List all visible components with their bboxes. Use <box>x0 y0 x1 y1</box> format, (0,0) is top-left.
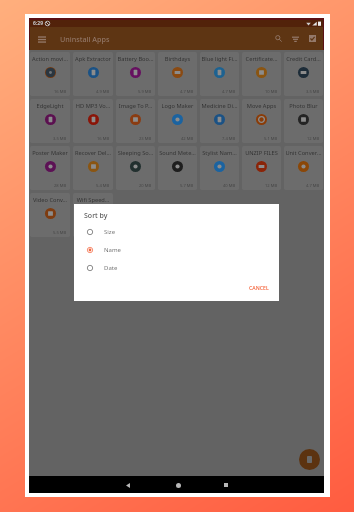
staticText: Battery Boo… <box>117 55 154 63</box>
button[interactable]: Apk Extractor <box>73 52 113 96</box>
button[interactable]: Back <box>120 477 136 493</box>
button[interactable]: Video Conv… <box>30 193 70 237</box>
staticText: 12 MB <box>307 136 320 142</box>
staticText: 4.1 MB <box>96 230 110 236</box>
button[interactable]: Blue light Fi… <box>200 52 239 96</box>
staticText: Video Conv… <box>31 196 69 204</box>
staticText: Action movi… <box>31 55 69 63</box>
staticText: 10 MB <box>265 89 278 95</box>
button[interactable]: Poster Maker <box>30 146 70 190</box>
staticText: Poster Maker <box>31 149 69 157</box>
button[interactable]: Size <box>74 223 279 241</box>
button[interactable]: HD MP3 Vo… <box>73 99 113 143</box>
button[interactable]: Move Apps <box>242 99 281 143</box>
button[interactable]: Recover Del… <box>73 146 113 190</box>
staticText: Birthdays <box>159 55 196 63</box>
staticText: Recover Del… <box>74 149 112 157</box>
staticText: Name <box>104 246 121 254</box>
staticText: Unit Convert… <box>285 149 322 157</box>
staticText: 16 MB <box>97 136 110 142</box>
staticText: 20 MB <box>139 183 152 189</box>
button[interactable]: Sleeping So… <box>116 146 155 190</box>
staticText: Date <box>104 264 118 272</box>
staticText: 4.9 MB <box>96 89 110 95</box>
button[interactable]: Home <box>170 477 186 493</box>
button[interactable]: EdgeLight <box>30 99 70 143</box>
staticText: 5.4 MB <box>96 183 110 189</box>
button[interactable]: Photo Blur <box>284 99 323 143</box>
staticText: UNZIP FILES <box>243 149 280 157</box>
staticText: Sort by <box>84 211 108 221</box>
button[interactable]: Logo Maker <box>158 99 197 143</box>
staticText: Apk Extractor <box>74 55 112 63</box>
button[interactable]: CANCEL <box>246 282 272 293</box>
staticText: 3.5 MB <box>306 89 320 95</box>
button[interactable]: Sound Mete… <box>158 146 197 190</box>
staticText: Wifi Speed… <box>74 196 112 204</box>
staticText: Medicine Di… <box>201 102 238 110</box>
button[interactable]: Certificate… <box>242 52 281 96</box>
staticText: Size <box>104 228 116 236</box>
button[interactable]: Birthdays <box>158 52 197 96</box>
staticText: 5.5 MB <box>53 230 67 236</box>
staticText: EdgeLight <box>31 102 69 110</box>
staticText: Sleeping So… <box>117 149 154 157</box>
staticText: Stylist Nam… <box>201 149 238 157</box>
staticText: Credit Card… <box>285 55 322 63</box>
button[interactable]: Date <box>74 259 279 277</box>
button[interactable]: Uninstall <box>299 449 320 470</box>
button[interactable]: Stylist Nam… <box>200 146 239 190</box>
button[interactable]: Wifi Speed… <box>73 193 113 237</box>
button[interactable]: Unit Convert… <box>284 146 323 190</box>
staticText: 7.4 MB <box>222 136 236 142</box>
staticText: Move Apps <box>243 102 280 110</box>
staticText: 28 MB <box>54 183 67 189</box>
button[interactable]: Sort <box>287 30 304 47</box>
staticText: 4.7 MB <box>180 89 194 95</box>
staticText: 4.7 MB <box>306 183 320 189</box>
staticText: Logo Maker <box>159 102 196 110</box>
button[interactable]: Battery Boo… <box>116 52 155 96</box>
staticText: 12 MB <box>265 183 278 189</box>
staticText: 4.7 MB <box>222 89 236 95</box>
staticText: CANCEL <box>249 284 269 291</box>
staticText: 5.1 MB <box>264 136 278 142</box>
button[interactable]: UNZIP FILES <box>242 146 281 190</box>
button[interactable]: Name <box>74 241 279 259</box>
staticText: Image To P… <box>117 102 154 110</box>
staticText: Sound Mete… <box>159 149 196 157</box>
staticText: Photo Blur <box>285 102 322 110</box>
button[interactable]: Menu <box>34 31 49 46</box>
staticText: 40 MB <box>223 183 236 189</box>
staticText: 16 MB <box>54 89 67 95</box>
button[interactable]: Image To P… <box>116 99 155 143</box>
staticText: 5.9 MB <box>138 89 152 95</box>
staticText: 42 MB <box>181 136 194 142</box>
staticText: Certificate… <box>243 55 280 63</box>
staticText: Blue light Fi… <box>201 55 238 63</box>
button[interactable]: Credit Card… <box>284 52 323 96</box>
button[interactable]: Medicine Di… <box>200 99 239 143</box>
staticText: 3.5 MB <box>53 136 67 142</box>
button[interactable]: Recents <box>218 477 234 493</box>
staticText: 23 MB <box>139 136 152 142</box>
button[interactable]: Select all <box>304 30 321 47</box>
staticText: Uninstall Apps <box>60 34 110 44</box>
staticText: 5.7 MB <box>180 183 194 189</box>
staticText: 6:29 <box>33 20 43 27</box>
button[interactable]: Action movi… <box>30 52 70 96</box>
staticText: HD MP3 Vo… <box>74 102 112 110</box>
button[interactable]: Search <box>270 30 287 47</box>
